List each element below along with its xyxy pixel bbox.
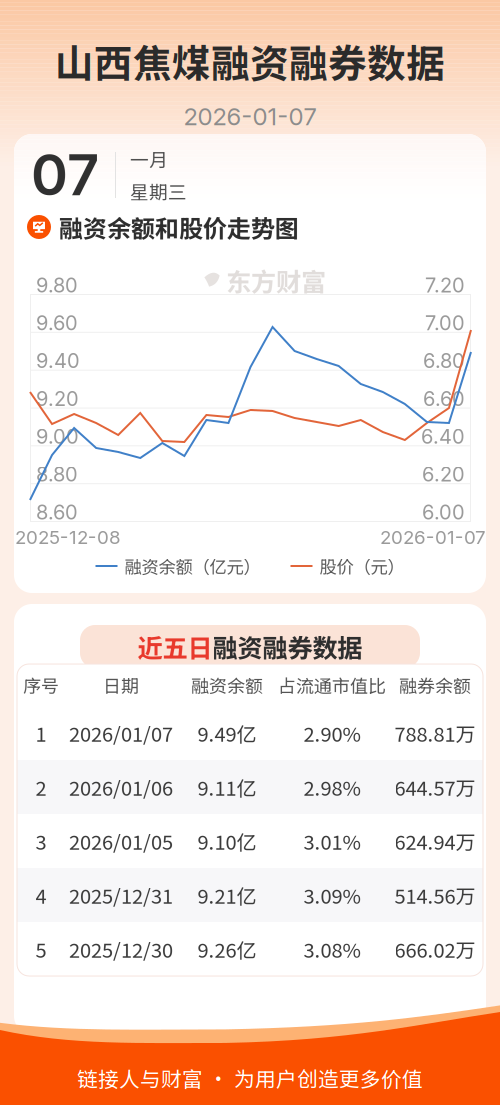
staticText: 9.26亿	[197, 934, 256, 963]
staticText: 3.01%	[303, 826, 360, 855]
staticText: 5	[35, 934, 46, 963]
staticText: 山西焦煤融资融券数据	[55, 33, 445, 89]
staticText: 融资余额（亿元）	[124, 553, 260, 579]
staticText: 链接人与财富 · 为用户创造更多价值	[77, 1063, 423, 1093]
staticText: 2026/01/06	[69, 772, 173, 801]
staticText: 6.60	[423, 386, 465, 411]
staticText: 2026/01/07	[69, 718, 173, 747]
staticText: 2026-01-07	[183, 102, 316, 131]
staticText: 6.80	[423, 349, 465, 373]
staticText: 9.40	[36, 349, 80, 373]
staticText: 2026-01-07	[380, 526, 486, 549]
staticText: 融券余额	[399, 672, 471, 698]
staticText: 3	[35, 826, 46, 855]
staticText: 624.94万	[394, 826, 475, 855]
staticText: 近五日	[137, 628, 212, 665]
staticText: 6.40	[421, 424, 465, 448]
staticText: 2026/01/05	[69, 826, 173, 855]
staticText: 2.90%	[303, 718, 360, 747]
staticText: 股价（元）	[319, 553, 404, 579]
staticText: 666.02万	[394, 934, 475, 963]
staticText: 占流通市值比	[278, 672, 386, 698]
staticText: 7.20	[425, 273, 465, 297]
staticText: 融资融券数据	[212, 628, 362, 665]
staticText: 9.10亿	[197, 826, 256, 855]
staticText: 6.00	[422, 500, 465, 524]
staticText: 4	[35, 880, 46, 909]
staticText: 514.56万	[394, 880, 475, 909]
staticText: 9.00	[36, 424, 79, 448]
staticText: 9.60	[36, 311, 78, 335]
staticText: 3.08%	[303, 934, 360, 963]
staticText: 644.57万	[394, 772, 475, 801]
staticText: 1	[35, 718, 46, 747]
staticText: 9.20	[36, 386, 79, 411]
staticText: 一月	[130, 145, 168, 172]
staticText: 9.80	[36, 273, 78, 297]
staticText: 8.80	[36, 462, 78, 486]
staticText: 9.49亿	[197, 718, 256, 747]
staticText: 融资余额	[191, 672, 263, 698]
staticText: 9.11亿	[197, 772, 256, 801]
staticText: 星期三	[130, 177, 187, 204]
staticText: 日期	[103, 672, 139, 698]
staticText: 7.00	[425, 311, 465, 335]
staticText: 序号	[23, 672, 59, 698]
staticText: 07	[31, 141, 99, 209]
staticText: 融资余额和股价走势图	[59, 210, 299, 244]
staticText: 3.09%	[303, 880, 360, 909]
staticText: 788.81万	[394, 718, 475, 747]
staticText: 2025/12/31	[69, 880, 173, 909]
staticText: 东方财富	[226, 262, 326, 299]
staticText: 9.21亿	[197, 880, 256, 909]
staticText: 8.60	[36, 500, 78, 524]
staticText: 2025/12/30	[69, 934, 173, 963]
staticText: 2.98%	[303, 772, 360, 801]
staticText: 2025-12-08	[15, 526, 121, 549]
staticText: 6.20	[422, 462, 465, 486]
staticText: 2	[35, 772, 46, 801]
